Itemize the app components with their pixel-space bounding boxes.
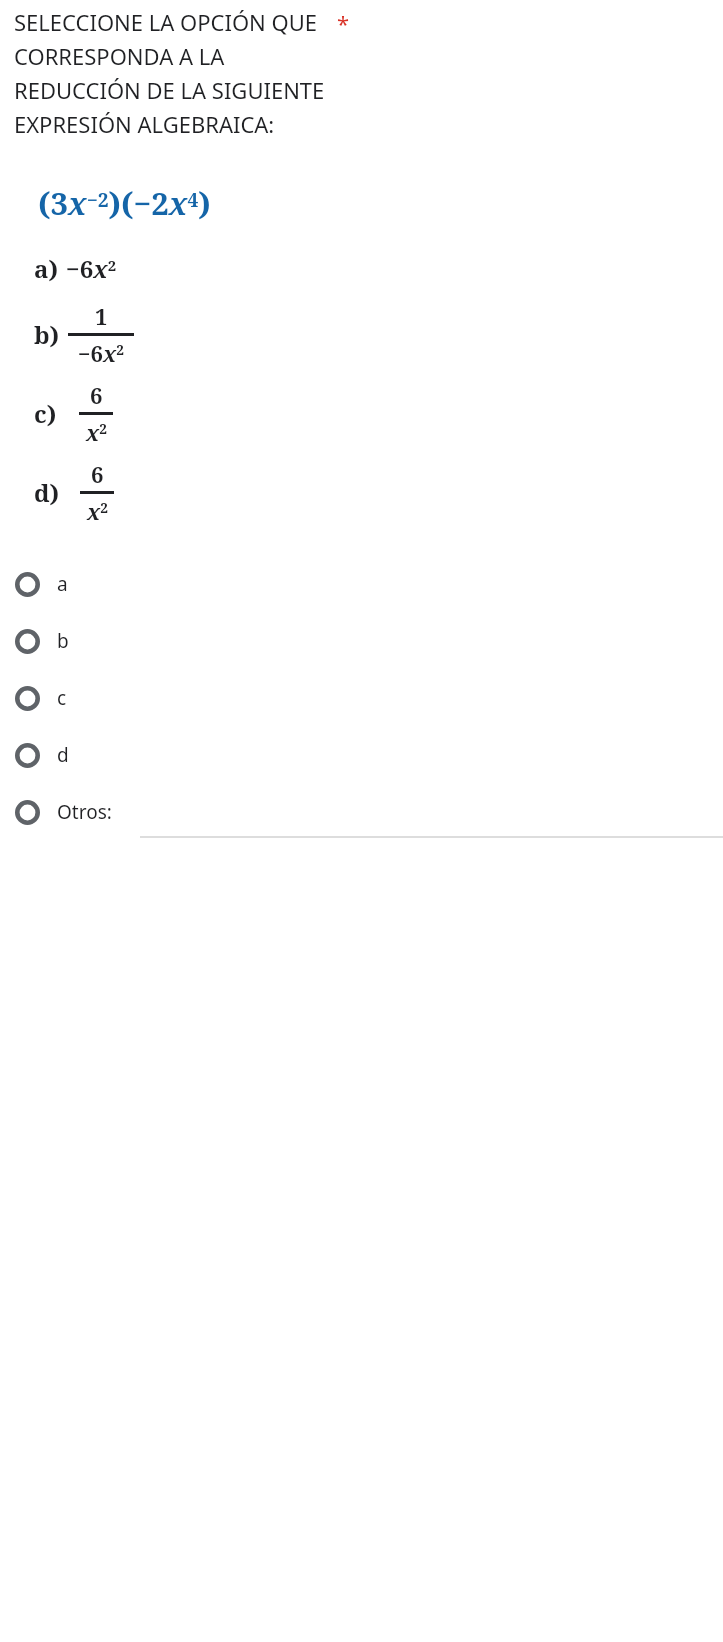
staticText: a xyxy=(57,571,68,597)
staticText: Otros: xyxy=(57,799,112,825)
other: Select option b xyxy=(15,629,40,654)
staticText: SELECCIONE LA OPCIÓN QUE CORRESPONDA A L… xyxy=(14,7,325,140)
staticText: 6 xyxy=(91,459,104,489)
button[interactable]: Select option a xyxy=(0,558,723,610)
button[interactable]: Select other xyxy=(0,786,723,838)
staticText: c xyxy=(57,685,67,711)
staticText: b xyxy=(57,628,69,654)
button[interactable]: Select option d xyxy=(0,729,723,781)
staticText: 1 xyxy=(95,301,108,331)
other: Select option d xyxy=(15,743,40,768)
staticText: d xyxy=(57,742,69,768)
staticText: d) xyxy=(34,476,60,509)
staticText: −6x2 xyxy=(78,338,125,368)
button[interactable]: Select option c xyxy=(0,672,723,724)
staticText: b) xyxy=(34,318,60,351)
staticText: a) xyxy=(34,252,59,285)
other: Select option c xyxy=(15,686,40,711)
staticText: x2 xyxy=(87,496,108,526)
button[interactable]: Select option b xyxy=(0,615,723,667)
staticText: c) xyxy=(34,397,57,430)
staticText: (3x−2)(−2x4) xyxy=(38,182,211,224)
staticText: 6 xyxy=(90,380,103,410)
other: Select option a xyxy=(15,572,40,597)
staticText: x2 xyxy=(86,417,107,447)
staticText: * xyxy=(337,8,350,38)
button[interactable]: Other answer text field xyxy=(140,786,723,838)
staticText: −6x2 xyxy=(66,252,117,285)
other: Select other xyxy=(15,800,40,825)
